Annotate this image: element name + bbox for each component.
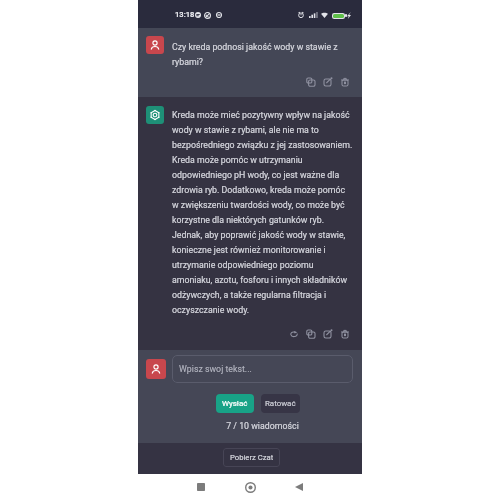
- button[interactable]: Ratować: [261, 394, 300, 413]
- button[interactable]: User: [146, 36, 164, 54]
- button[interactable]: Regenerate: [288, 328, 299, 339]
- staticText: 13:18: [175, 10, 195, 19]
- button[interactable]: Edit: [322, 328, 333, 339]
- button[interactable]: Delete: [339, 328, 350, 339]
- staticText: Ratować: [265, 399, 296, 408]
- button[interactable]: Wpisz swoj tekst...: [172, 355, 353, 383]
- staticText: Wpisz swoj tekst...: [179, 364, 252, 374]
- button[interactable]: Edit: [322, 76, 333, 87]
- staticText: Wysłać: [222, 399, 248, 408]
- button[interactable]: Wysłać: [216, 394, 254, 413]
- staticText: Pobierz Czat: [230, 453, 274, 462]
- button[interactable]: Copy: [305, 328, 316, 339]
- button[interactable]: Recents: [177, 474, 225, 500]
- button[interactable]: Delete: [339, 76, 350, 87]
- button[interactable]: Copy: [305, 76, 316, 87]
- staticText: Czy kreda podnosi jakość wody w stawie z…: [172, 42, 353, 67]
- staticText: 7 / 10 wiadomości: [226, 421, 299, 431]
- button[interactable]: Back: [275, 474, 323, 500]
- button[interactable]: Home: [226, 474, 274, 500]
- staticText: Kreda może mieć pozytywny wpływ na jakoś…: [172, 110, 353, 315]
- button[interactable]: User: [146, 359, 166, 379]
- button[interactable]: Pobierz Czat: [223, 448, 280, 467]
- button[interactable]: Assistant: [146, 106, 164, 124]
